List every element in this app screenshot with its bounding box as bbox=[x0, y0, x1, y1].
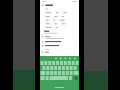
button[interactable] bbox=[40, 15, 53, 19]
button[interactable] bbox=[53, 23, 66, 27]
button[interactable] bbox=[40, 27, 53, 31]
button[interactable] bbox=[45, 3, 79, 8]
button[interactable] bbox=[40, 11, 53, 15]
button[interactable] bbox=[40, 36, 79, 40]
button[interactable] bbox=[40, 19, 53, 23]
button[interactable] bbox=[40, 32, 79, 36]
button[interactable]: Close bbox=[40, 3, 45, 8]
button[interactable] bbox=[40, 48, 79, 52]
button[interactable] bbox=[53, 27, 66, 31]
button[interactable] bbox=[53, 11, 66, 15]
button[interactable] bbox=[40, 23, 53, 27]
button[interactable] bbox=[40, 40, 79, 44]
button[interactable] bbox=[53, 15, 66, 19]
button[interactable] bbox=[66, 11, 79, 15]
button[interactable] bbox=[40, 44, 79, 48]
button[interactable] bbox=[53, 19, 66, 23]
